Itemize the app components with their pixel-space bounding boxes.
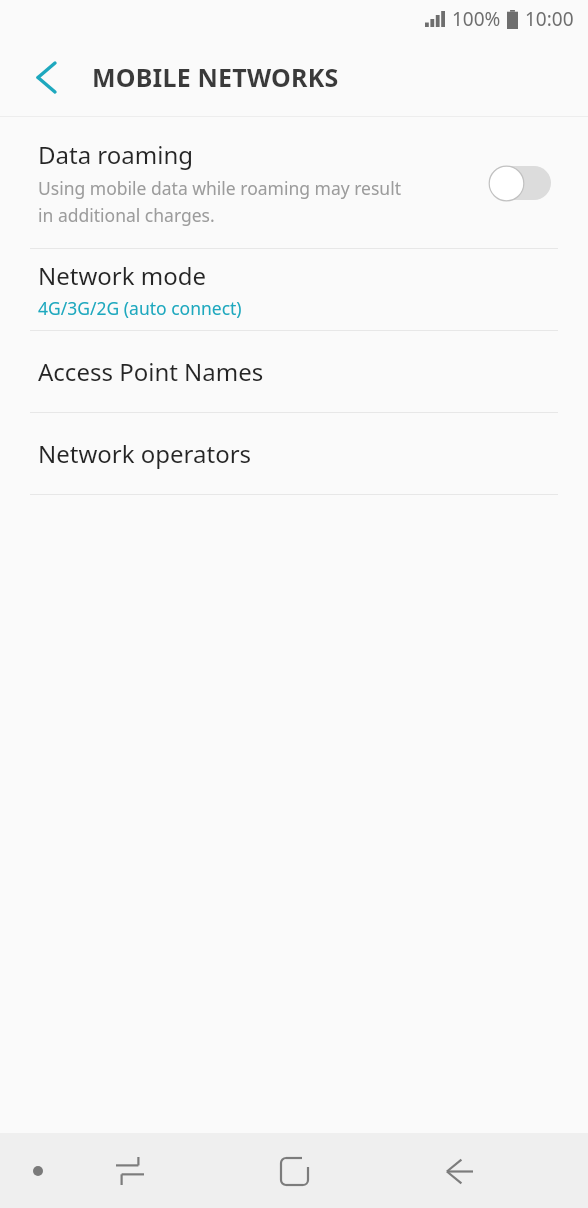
button[interactable]: Navigation hint [14, 1147, 62, 1195]
button[interactable]: Access Point Names [0, 331, 588, 412]
button[interactable]: Network operators [0, 413, 588, 494]
staticText: Network mode [38, 259, 207, 292]
staticText: MOBILE NETWORKS [92, 60, 339, 94]
button[interactable]: Back [424, 1137, 492, 1205]
staticText: Network operators [38, 437, 252, 470]
button[interactable]: Navigate up [18, 49, 74, 105]
staticText: 4G/3G/2G (auto connect) [38, 296, 242, 320]
button[interactable]: Recent apps [96, 1137, 164, 1205]
button[interactable]: Network mode [0, 249, 588, 330]
staticText: Access Point Names [38, 355, 264, 388]
button[interactable]: Data roaming [0, 117, 588, 248]
staticText: 10:00 [525, 6, 574, 32]
staticText: Using mobile data while roaming may resu… [38, 176, 401, 227]
button[interactable]: Home [260, 1137, 328, 1205]
button[interactable]: Data roaming toggle, off [488, 164, 552, 202]
staticText: Data roaming [38, 138, 193, 171]
staticText: 100% [452, 6, 501, 32]
